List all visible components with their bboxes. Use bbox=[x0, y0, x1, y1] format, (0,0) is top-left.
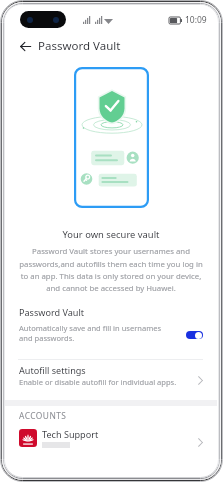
staticText: Enable or disable autofill for individua… bbox=[19, 377, 177, 387]
button[interactable]: Autofill settings bbox=[5, 361, 217, 399]
button[interactable]: Tech Support bbox=[5, 426, 217, 464]
staticText: Password Vault stores your usernames and… bbox=[5, 246, 217, 293]
button[interactable]: Open autofill settings bbox=[190, 369, 210, 391]
staticText: Automatically save and fill in usernames… bbox=[19, 323, 162, 343]
button[interactable]: Back bbox=[13, 34, 37, 58]
staticText: Password Vault bbox=[38, 38, 121, 54]
staticText: Your own secure vault bbox=[5, 228, 217, 241]
staticText: Password Vault bbox=[19, 306, 85, 318]
staticText: Autofill settings bbox=[19, 364, 86, 376]
staticText: Tech Support bbox=[42, 428, 99, 440]
staticText: ACCOUNTS bbox=[19, 410, 67, 421]
button[interactable]: Toggle Password Vault bbox=[186, 331, 203, 339]
button[interactable]: Password Vault bbox=[5, 303, 217, 359]
staticText: 10:09 bbox=[185, 14, 207, 26]
button[interactable]: Open Tech Support bbox=[190, 431, 210, 453]
